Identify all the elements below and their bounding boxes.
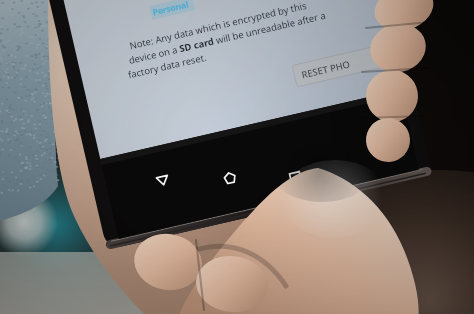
button[interactable]: Home <box>196 162 232 198</box>
button[interactable]: Recent apps <box>256 186 292 222</box>
button[interactable]: Back <box>132 140 168 176</box>
button[interactable]: Reset phone <box>262 142 342 168</box>
